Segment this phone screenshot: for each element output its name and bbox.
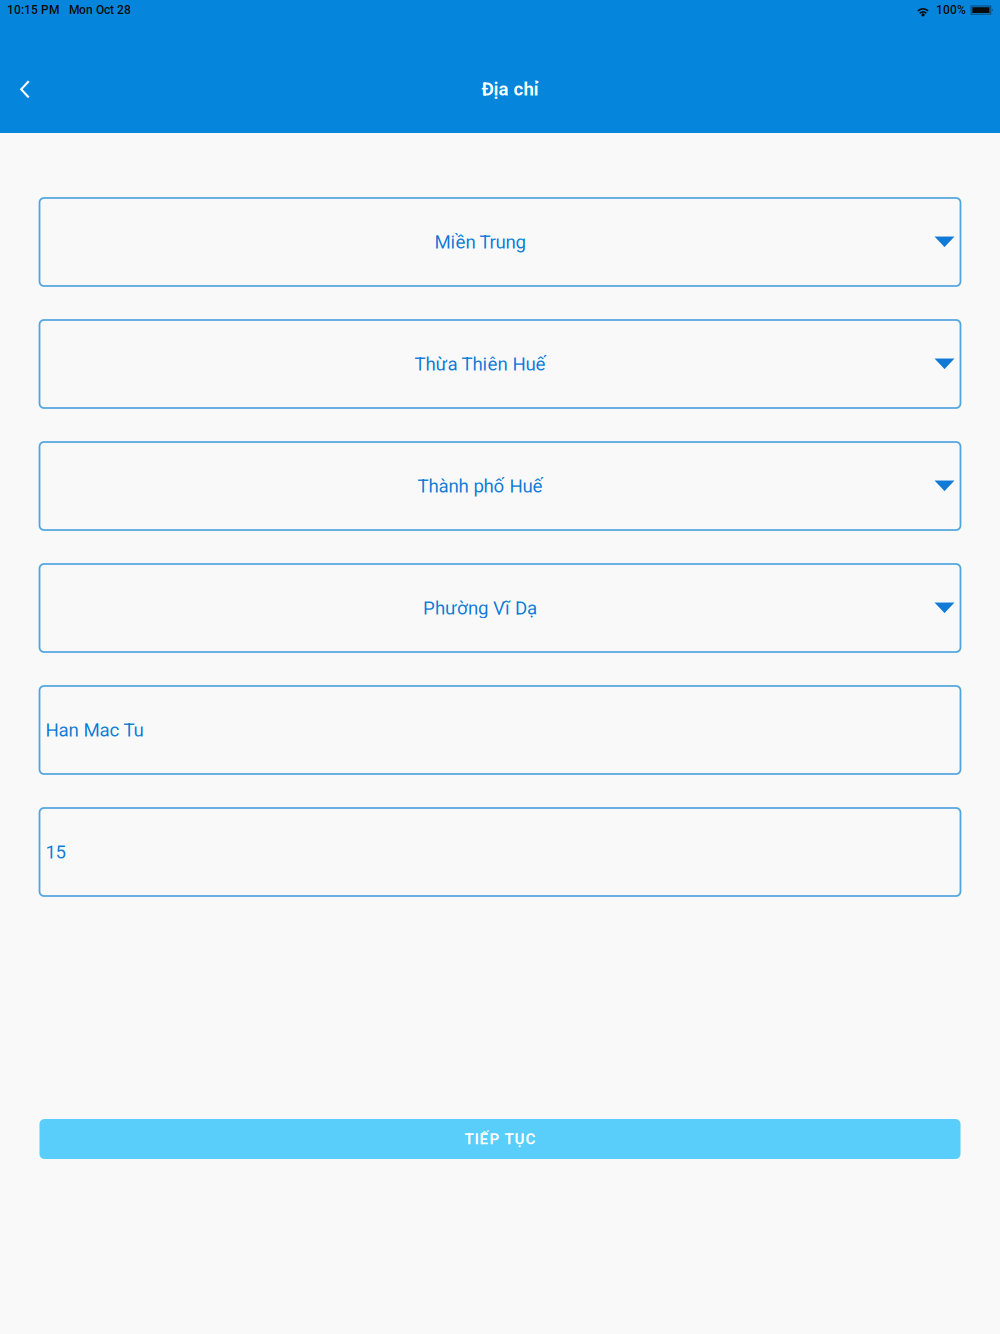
staticText: 100% (936, 3, 966, 17)
staticText: Phường Vĩ Dạ (423, 597, 537, 619)
staticText: 10:15 PM (7, 3, 59, 17)
staticText: Mon Oct 28 (69, 3, 131, 17)
button[interactable]: TIẾP TỤC (39, 1119, 960, 1159)
button[interactable]: Miền Trung (39, 198, 960, 286)
button[interactable]: Thành phố Huế (39, 442, 960, 530)
button[interactable]: Han Mac Tu (39, 686, 960, 774)
staticText: Thừa Thiên Huế (414, 353, 545, 375)
button[interactable]: 15 (39, 808, 960, 896)
staticText: Miền Trung (434, 231, 525, 253)
staticText: TIẾP TỤC (464, 1130, 535, 1148)
staticText: Han Mac Tu (45, 719, 143, 741)
button[interactable]: Thừa Thiên Huế (39, 320, 960, 408)
staticText: 15 (45, 841, 65, 863)
staticText: Địa chỉ (481, 78, 538, 100)
staticText: Thành phố Huế (417, 475, 542, 497)
button[interactable]: Back (0, 20, 60, 133)
button[interactable]: Phường Vĩ Dạ (39, 564, 960, 652)
